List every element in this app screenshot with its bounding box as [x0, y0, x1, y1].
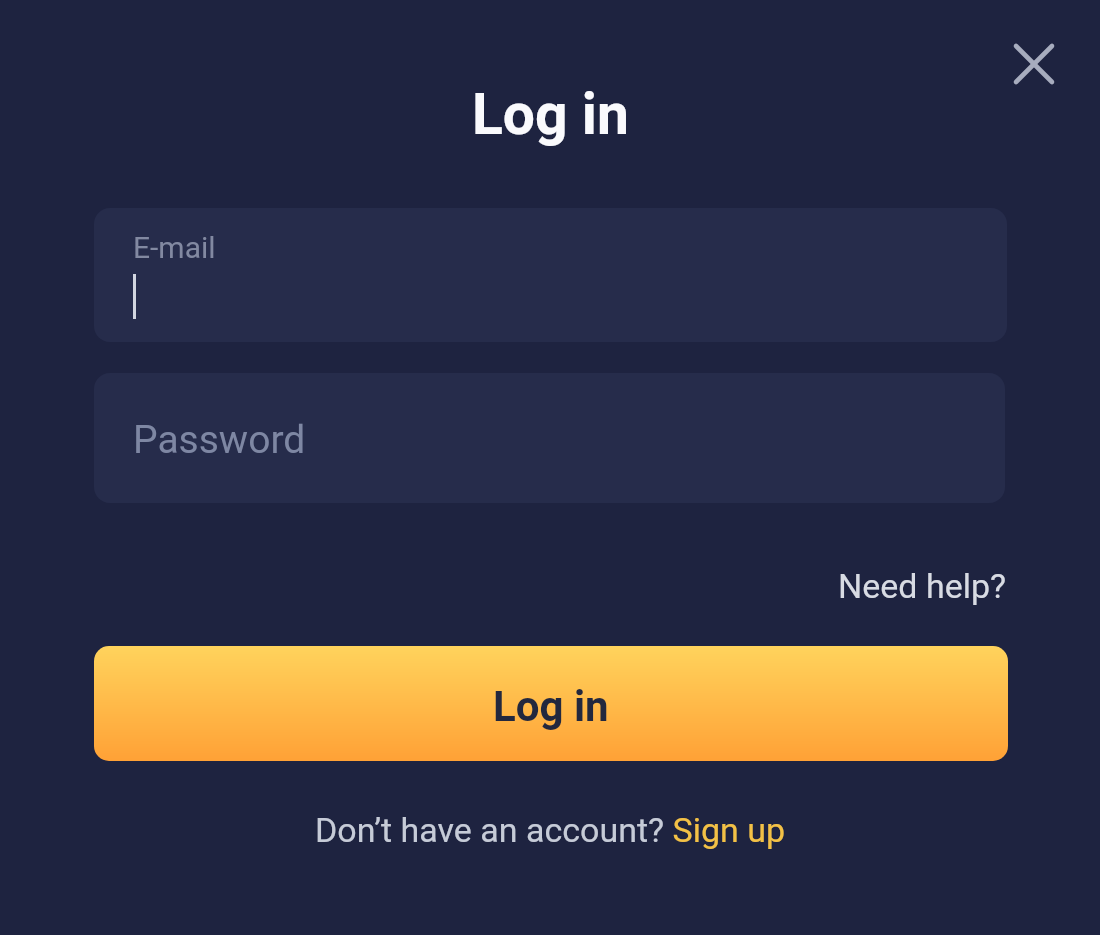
button[interactable]: Don’t have an account? Sign up [315, 810, 786, 850]
staticText: Log in [493, 682, 609, 731]
staticText: Log in [472, 81, 629, 148]
staticText: E-mail [133, 230, 216, 265]
button[interactable]: E-mail [94, 208, 1007, 342]
button[interactable] [1003, 33, 1065, 95]
button[interactable]: Password [94, 373, 1005, 503]
button[interactable]: Need help? [838, 566, 1007, 606]
staticText: Password [133, 417, 306, 463]
button[interactable]: Log in [94, 646, 1008, 761]
